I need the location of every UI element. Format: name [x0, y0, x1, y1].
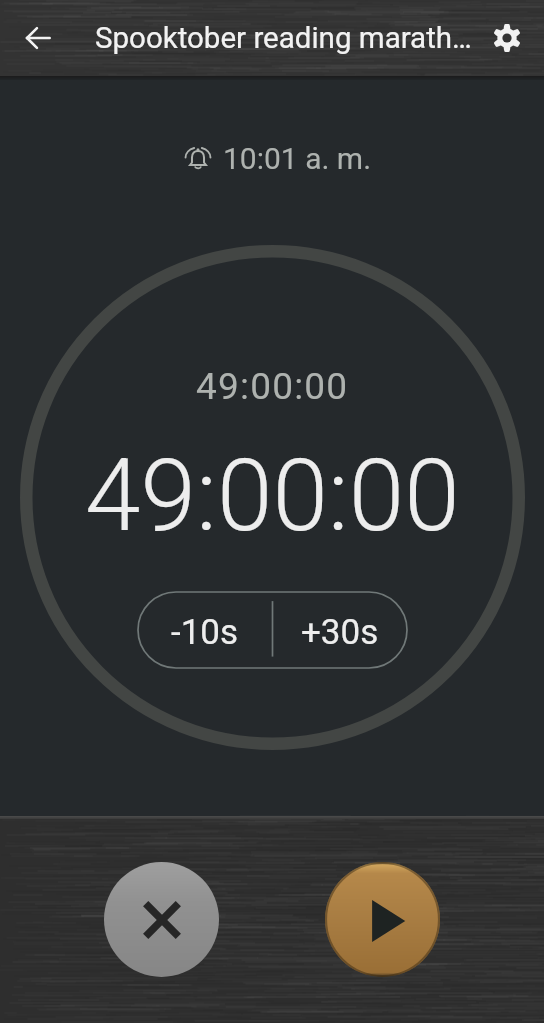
button[interactable]: +30s [272, 592, 407, 668]
button[interactable]: Back [12, 12, 64, 64]
button[interactable]: Cancel [104, 862, 219, 977]
staticText: Spooktober reading marath… [95, 21, 481, 56]
staticText: 49:00:00 [85, 437, 460, 554]
button[interactable]: Start [325, 862, 440, 977]
staticText: 10:01 a. m. [223, 141, 372, 176]
button[interactable]: -10s [138, 592, 272, 668]
staticText: -10s [171, 612, 239, 653]
button[interactable]: Settings [481, 12, 533, 64]
staticText: +30s [301, 612, 379, 653]
staticText: 49:00:00 [196, 365, 349, 408]
